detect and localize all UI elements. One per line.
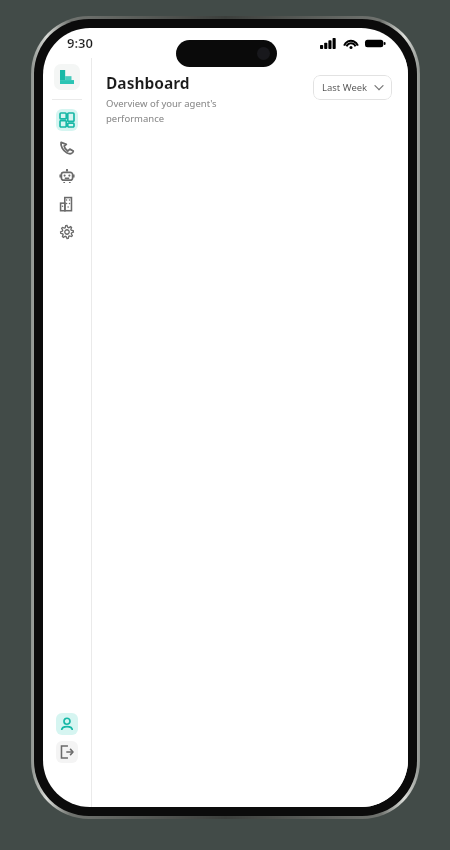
staticText: performance xyxy=(106,112,165,125)
staticText: 9:30 xyxy=(67,34,93,52)
button[interactable]: Calls xyxy=(56,137,78,159)
button[interactable]: Log out xyxy=(56,741,78,763)
button[interactable]: App logo xyxy=(54,64,80,90)
staticText: Last Week xyxy=(322,81,368,94)
button[interactable]: Last Week xyxy=(313,75,392,100)
button[interactable]: Agents xyxy=(56,165,78,187)
staticText: Dashboard xyxy=(106,72,190,93)
button[interactable]: Settings xyxy=(56,221,78,243)
button[interactable]: Organisation xyxy=(56,193,78,215)
staticText: Overview of your agent's xyxy=(106,97,217,110)
button[interactable]: Dashboard xyxy=(56,109,78,131)
button[interactable]: Profile xyxy=(56,713,78,735)
